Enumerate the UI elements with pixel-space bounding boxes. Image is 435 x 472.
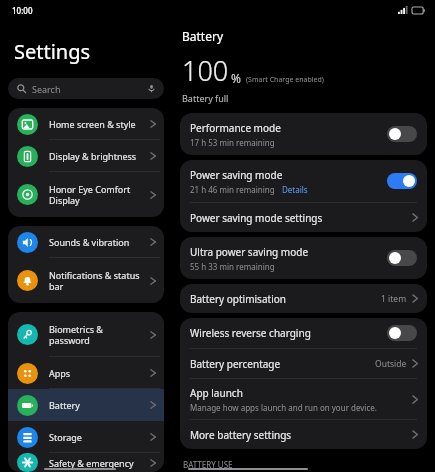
staticText: Notifications & status bar xyxy=(49,269,140,293)
button[interactable]: More battery settings xyxy=(180,420,427,449)
staticText: Settings xyxy=(14,38,91,65)
staticText: BATTERY USE xyxy=(183,459,233,470)
button[interactable]: Power saving mode settings xyxy=(180,203,427,232)
button[interactable]: Toggle on xyxy=(387,173,417,189)
staticText: Battery optimisation xyxy=(190,292,286,306)
staticText: Display & brightness xyxy=(49,150,137,162)
staticText: Ultra power saving mode xyxy=(190,245,309,259)
staticText: Power saving mode settings xyxy=(190,211,323,225)
button[interactable]: Display & brightness xyxy=(8,140,164,172)
button[interactable]: Battery xyxy=(8,389,164,421)
staticText: App launch xyxy=(190,386,243,400)
staticText: More battery settings xyxy=(190,428,292,442)
button[interactable]: App launch xyxy=(180,379,427,419)
button[interactable]: Toggle off xyxy=(387,325,417,341)
button[interactable]: Search xyxy=(8,78,164,99)
button[interactable]: Battery percentage xyxy=(180,349,427,378)
staticText: Details xyxy=(282,184,308,195)
staticText: Honor Eye Comfort Display xyxy=(49,183,131,207)
button[interactable]: Notifications & status bar xyxy=(8,258,164,303)
button[interactable]: Power saving mode xyxy=(180,160,427,202)
staticText: Home screen & style xyxy=(49,118,136,130)
staticText: Wireless reverse charging xyxy=(190,326,387,340)
staticText: % xyxy=(231,70,241,86)
button[interactable]: Safety & emergency xyxy=(8,453,164,472)
button[interactable]: Honor Eye Comfort Display xyxy=(8,172,164,217)
staticText: Sounds & vibration xyxy=(49,236,130,248)
button[interactable]: Ultra power saving mode xyxy=(180,237,427,279)
button[interactable]: Wireless reverse charging xyxy=(180,318,427,348)
button[interactable]: Storage xyxy=(8,421,164,453)
button[interactable]: Performance mode xyxy=(180,113,427,155)
staticText: 21 h 46 min remaining xyxy=(190,184,275,195)
staticText: Search xyxy=(32,83,147,95)
button[interactable]: Toggle off xyxy=(387,250,417,266)
staticText: 10:00 xyxy=(12,5,33,16)
button[interactable]: Battery optimisation xyxy=(180,284,427,313)
staticText: Power saving mode xyxy=(190,168,283,182)
staticText: Outside xyxy=(375,358,407,370)
staticText: Safety & emergency xyxy=(49,457,134,469)
button[interactable]: Toggle off xyxy=(387,126,417,142)
staticText: (Smart Charge enabled) xyxy=(246,75,324,85)
staticText: Performance mode xyxy=(190,121,281,135)
button[interactable]: Sounds & vibration xyxy=(8,226,164,258)
staticText: Battery xyxy=(49,399,80,411)
staticText: Battery percentage xyxy=(190,357,281,371)
button[interactable]: Biometrics & password xyxy=(8,312,164,357)
staticText: Battery full xyxy=(182,92,229,104)
staticText: Manage how apps launch and run on your d… xyxy=(190,402,377,413)
staticText: Apps xyxy=(49,367,71,379)
button[interactable]: Home screen & style xyxy=(8,108,164,140)
staticText: Storage xyxy=(49,431,82,443)
staticText: 100 xyxy=(182,52,229,89)
staticText: Battery xyxy=(182,28,224,44)
button[interactable]: Apps xyxy=(8,357,164,389)
staticText: 55 h 33 min remaining xyxy=(190,261,275,272)
staticText: 17 h 53 min remaining xyxy=(190,137,275,148)
staticText: 1 item xyxy=(381,293,407,305)
staticText: Biometrics & password xyxy=(49,323,103,347)
